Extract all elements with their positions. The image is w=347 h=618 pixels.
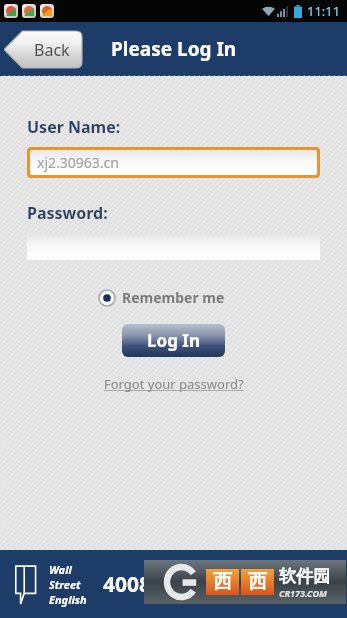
staticText: 软件园 [279, 566, 330, 587]
staticText: Remember me [122, 288, 225, 307]
staticText: English [49, 592, 87, 607]
button[interactable]: Back [4, 31, 82, 68]
staticText: User Name: [27, 116, 121, 138]
staticText: 西 [248, 570, 267, 594]
button[interactable]: xj2.30963.cn [30, 150, 317, 175]
staticText: Log In [147, 329, 200, 352]
staticText: Wall [49, 562, 72, 577]
button[interactable] [27, 233, 320, 260]
staticText: Back [34, 39, 70, 61]
staticText: Street [49, 577, 81, 592]
staticText: xj2.30963.cn [37, 153, 119, 172]
staticText: CR173.COM [279, 587, 327, 599]
staticText: Password: [27, 202, 108, 224]
staticText: Please Log In [111, 36, 237, 62]
button[interactable]: Log In [122, 324, 225, 357]
button[interactable]: Remember me [96, 285, 228, 310]
button[interactable]: Forgot your password? [100, 371, 248, 397]
staticText: 11:11 [307, 2, 341, 20]
staticText: 西 [213, 570, 232, 594]
staticText: 4008 [103, 570, 152, 599]
staticText: Forgot your password? [104, 375, 244, 393]
